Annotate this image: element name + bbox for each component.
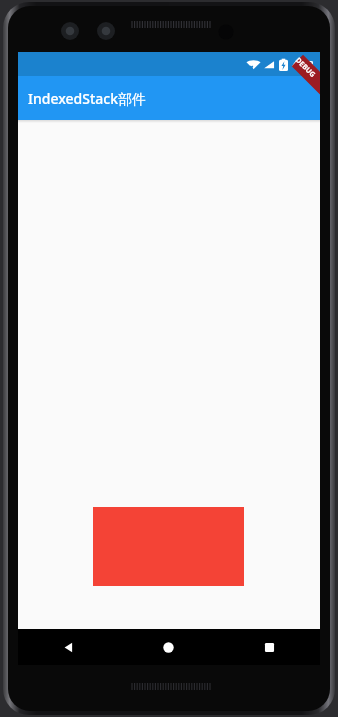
staticText: IndexedStack部件 <box>28 89 146 108</box>
button[interactable]: Back <box>18 629 118 665</box>
button[interactable]: Recent apps <box>219 629 320 665</box>
staticText: DEBUG <box>293 56 318 80</box>
staticText: 4:43 <box>292 57 314 72</box>
button[interactable]: Home <box>118 629 219 665</box>
